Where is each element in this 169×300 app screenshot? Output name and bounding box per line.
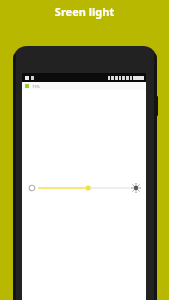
button[interactable]: Decrease brightness	[22, 178, 146, 198]
staticText: Sreen light	[0, 4, 169, 19]
button[interactable]: Brightness slider	[38, 181, 130, 195]
button[interactable]: 73%	[22, 82, 146, 90]
staticText: 73%	[32, 84, 40, 89]
button[interactable]: Increase brightness	[130, 182, 142, 194]
button[interactable]: Decrease brightness	[26, 182, 38, 194]
